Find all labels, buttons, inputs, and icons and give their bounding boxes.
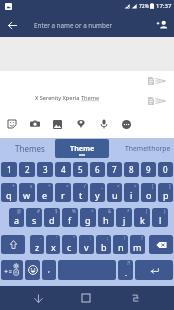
button[interactable]: 4: [55, 162, 71, 177]
button[interactable]: !: [113, 235, 128, 254]
button[interactable]: 6: [90, 162, 105, 177]
button[interactable]: ,: [42, 260, 56, 280]
button[interactable]: :: [79, 235, 94, 254]
staticText: 5: [78, 164, 83, 175]
staticText: ?!: [127, 260, 131, 266]
staticText: (: [146, 208, 148, 214]
staticText: =: [66, 183, 69, 189]
button[interactable]: <: [107, 183, 122, 202]
button[interactable]: /: [73, 183, 88, 202]
button[interactable]: Recents: [123, 286, 148, 310]
button[interactable]: (: [134, 208, 150, 227]
button[interactable]: More: [115, 113, 138, 135]
staticText: z: [35, 241, 40, 253]
button[interactable]: 3: [37, 162, 53, 177]
button[interactable]: [: [141, 183, 156, 202]
button[interactable]: -: [30, 235, 44, 254]
button[interactable]: ]: [158, 183, 173, 202]
button[interactable]: 5: [73, 162, 88, 177]
staticText: [: [152, 183, 154, 189]
button[interactable]: +: [1, 183, 17, 202]
button[interactable]: Back: [0, 13, 24, 37]
button[interactable]: Space: [58, 260, 116, 280]
button[interactable]: x: [19, 183, 35, 202]
button[interactable]: ': [46, 235, 60, 254]
button[interactable]: X Serenity Xperia: [35, 93, 100, 103]
button[interactable]: Themelthorpe: [109, 138, 174, 158]
button[interactable]: %: [62, 208, 78, 227]
button[interactable]: Camera: [23, 113, 46, 135]
button[interactable]: Sticker: [0, 113, 23, 135]
staticText: %: [72, 208, 76, 214]
button[interactable]: *: [116, 208, 132, 227]
button[interactable]: 9: [141, 162, 156, 177]
staticText: o: [146, 189, 152, 201]
staticText: ': [56, 235, 58, 241]
button[interactable]: =: [55, 183, 71, 202]
button[interactable]: ;: [96, 235, 111, 254]
staticText: #: [37, 208, 40, 214]
button[interactable]: Home: [73, 286, 98, 310]
staticText: g: [85, 214, 91, 226]
button[interactable]: Enter: [135, 260, 173, 280]
staticText: Themelthorpe: [125, 144, 171, 153]
button[interactable]: >: [124, 183, 139, 202]
button[interactable]: ^: [80, 208, 96, 227]
staticText: ]: [169, 183, 171, 189]
button[interactable]: 7: [107, 162, 122, 177]
staticText: Themes: [15, 143, 45, 154]
button[interactable]: @: [9, 208, 24, 227]
staticText: -: [40, 235, 42, 241]
button[interactable]: #: [26, 208, 42, 227]
staticText: c: [67, 241, 72, 253]
button[interactable]: 2: [19, 162, 35, 177]
staticText: 0: [163, 164, 168, 175]
button[interactable]: 1: [1, 162, 17, 177]
button[interactable]: 8: [124, 162, 139, 177]
staticText: ÷: [48, 183, 51, 189]
staticText: a: [14, 214, 20, 226]
staticText: :: [90, 235, 92, 241]
staticText: X Serenity Xperia: [35, 94, 81, 102]
button[interactable]: 0: [158, 162, 173, 177]
staticText: 1: [7, 164, 12, 175]
staticText: j: [123, 214, 126, 226]
staticText: *: [127, 208, 130, 214]
button[interactable]: Backspace: [149, 235, 173, 254]
staticText: r: [61, 189, 65, 201]
button[interactable]: Emoji: [25, 260, 40, 280]
staticText: k: [140, 214, 145, 226]
button[interactable]: Add contact: [150, 13, 174, 37]
staticText: !: [124, 235, 126, 241]
staticText: 17:37: [156, 2, 172, 10]
staticText: ?: [141, 235, 143, 241]
staticText: 6: [95, 164, 100, 175]
staticText: b: [101, 241, 107, 253]
staticText: s: [32, 214, 37, 226]
staticText: ;: [107, 235, 109, 241]
staticText: y: [95, 189, 100, 201]
button[interactable]: ?: [130, 235, 145, 254]
button[interactable]: ": [62, 235, 77, 254]
button[interactable]: ): [152, 208, 168, 227]
staticText: 7: [112, 164, 117, 175]
button[interactable]: Symbols: [1, 260, 23, 280]
staticText: 4: [61, 164, 66, 175]
button[interactable]: &: [98, 208, 114, 227]
staticText: v: [84, 241, 89, 253]
button[interactable]: _: [90, 183, 105, 202]
button[interactable]: ?!: [118, 260, 133, 280]
button[interactable]: Location: [69, 113, 92, 135]
staticText: 72%: [139, 3, 149, 10]
button[interactable]: Hide keyboard: [26, 286, 51, 310]
button[interactable]: Themes: [0, 138, 55, 158]
button[interactable]: Voice message: [92, 113, 115, 135]
button[interactable]: Gallery: [46, 113, 69, 135]
staticText: q: [6, 189, 12, 201]
staticText: ): [164, 208, 166, 214]
button[interactable]: $: [44, 208, 60, 227]
button[interactable]: Shift: [1, 235, 25, 254]
button[interactable]: Theme: [55, 139, 109, 158]
staticText: 2: [25, 164, 30, 175]
button[interactable]: ÷: [37, 183, 53, 202]
